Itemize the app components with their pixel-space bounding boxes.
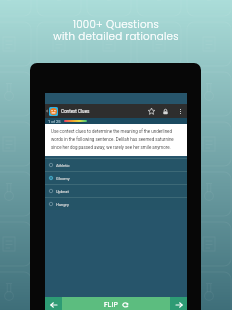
- staticText: Use context clues to determine the meani…: [51, 129, 178, 150]
- staticText: 1000+ Questions with detailed rationales: [0, 17, 232, 44]
- staticText: Gloomy: [56, 176, 70, 181]
- button[interactable]: Favorite: [144, 104, 158, 118]
- button[interactable]: Upbeat: [45, 185, 187, 197]
- button[interactable]: Navigate up: [45, 104, 49, 118]
- button[interactable]: More options: [173, 104, 187, 118]
- button[interactable]: FLIP: [62, 297, 170, 310]
- button[interactable]: Athletic: [45, 159, 187, 171]
- button[interactable]: Hungry: [45, 198, 187, 210]
- staticText: 1 of 25: [48, 119, 61, 124]
- button[interactable]: Lock: [158, 104, 173, 118]
- staticText: Hungry: [56, 202, 69, 207]
- staticText: Athletic: [56, 163, 70, 168]
- staticText: Context Clues: [61, 109, 90, 114]
- button[interactable]: Gloomy: [45, 172, 187, 184]
- button[interactable]: Previous card: [45, 297, 62, 310]
- staticText: FLIP: [104, 301, 119, 309]
- staticText: Upbeat: [56, 189, 69, 194]
- button[interactable]: Next card: [170, 297, 187, 310]
